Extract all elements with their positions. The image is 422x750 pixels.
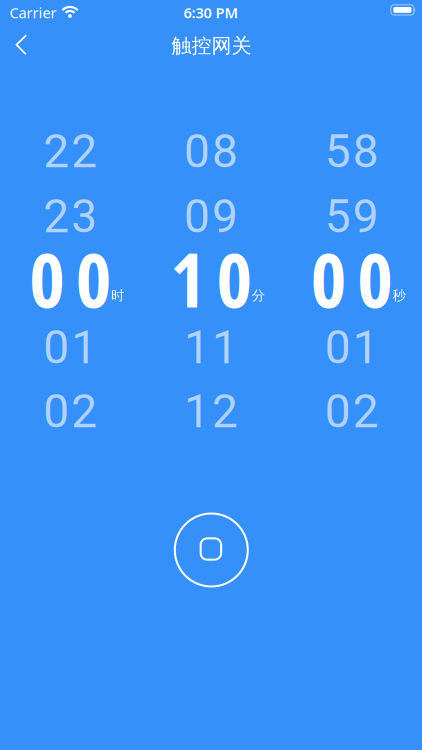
staticText: 02 [325, 384, 379, 438]
staticText: 09 [184, 189, 238, 243]
staticText: 01 [325, 320, 379, 374]
staticText: 02 [43, 384, 97, 438]
staticText: 0 [311, 226, 346, 330]
staticText: Carrier [9, 3, 56, 22]
staticText: 22 [43, 124, 97, 178]
staticText: 08 [184, 124, 238, 178]
staticText: 6:30 PM [183, 3, 238, 22]
staticText: 59 [325, 189, 379, 243]
button[interactable]: Stop [171, 510, 251, 590]
staticText: 触控网关 [171, 34, 251, 58]
staticText: 分 [252, 287, 265, 304]
staticText: 01 [43, 320, 97, 374]
button[interactable]: Back [4, 24, 38, 65]
staticText: 秒 [392, 287, 405, 304]
staticText: 12 [184, 384, 238, 438]
staticText: 时 [111, 287, 124, 304]
staticText: 0 [357, 226, 392, 330]
staticText: 1 [170, 226, 205, 330]
staticText: 0 [76, 226, 111, 330]
staticText: 11 [184, 320, 238, 374]
staticText: 0 [217, 226, 252, 330]
staticText: 23 [43, 189, 97, 243]
staticText: 58 [325, 124, 379, 178]
staticText: 0 [30, 226, 65, 330]
